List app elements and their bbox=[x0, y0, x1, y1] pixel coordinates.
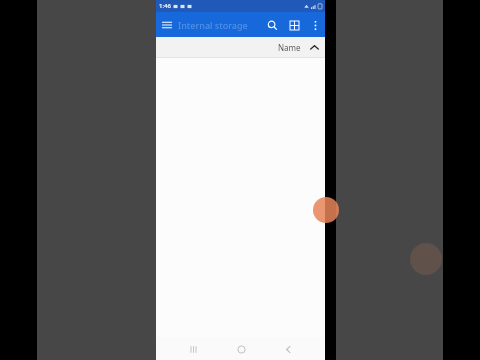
button[interactable]: Internal storage bbox=[178, 12, 261, 37]
staticText: Internal storage bbox=[178, 19, 248, 31]
button[interactable]: Recent apps bbox=[183, 339, 203, 359]
button[interactable]: More options bbox=[305, 15, 325, 35]
staticText: Name bbox=[278, 42, 301, 53]
button[interactable]: Search bbox=[261, 14, 283, 36]
button[interactable]: Open navigation drawer bbox=[156, 14, 178, 36]
staticText: 1:46 bbox=[159, 2, 171, 10]
button[interactable]: Change view bbox=[283, 14, 305, 36]
button[interactable]: Home bbox=[231, 339, 251, 359]
button[interactable]: Name bbox=[278, 40, 321, 54]
button[interactable]: Add bbox=[313, 197, 339, 223]
button[interactable]: Back bbox=[278, 339, 298, 359]
